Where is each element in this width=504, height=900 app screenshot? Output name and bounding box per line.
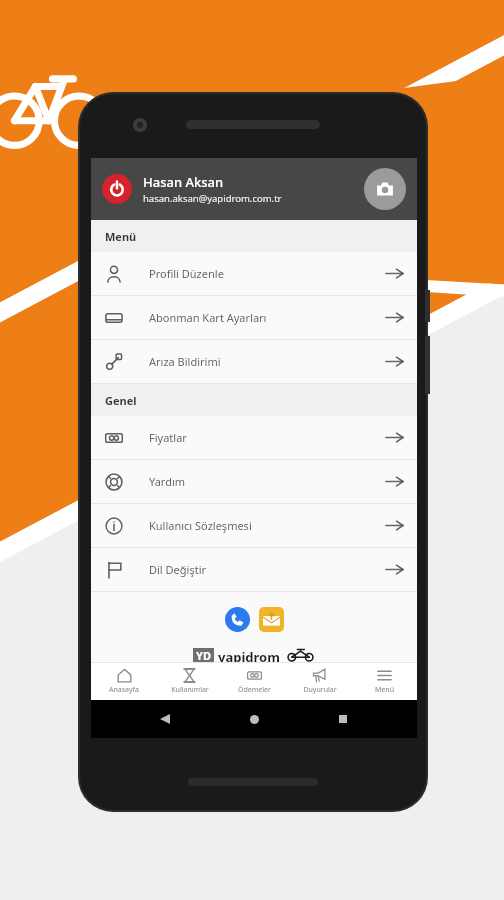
button[interactable]: Geri [150,704,180,734]
staticText: Arıza Bildirimi [149,354,386,369]
button[interactable]: Abonman Kart Ayarları [91,296,417,339]
staticText: Profili Düzenle [149,266,386,281]
staticText: Menü [105,229,137,244]
button[interactable]: Yardım [91,460,417,503]
button[interactable]: Menü [352,663,417,700]
staticText: Duyurular [303,685,337,695]
staticText: Kullanıcı Sözleşmesi [149,518,386,533]
staticText: Menü [375,685,394,695]
button[interactable]: Çıkış yap [102,174,132,204]
button[interactable]: Ödemeler [222,663,287,700]
staticText: Yardım [149,474,386,489]
staticText: Anasayfa [109,685,139,695]
button[interactable]: Kullanımlar [157,663,222,700]
button[interactable]: Telefon et [225,607,250,632]
button[interactable]: Arıza Bildirimi [91,340,417,383]
staticText: Fiyatlar [149,430,386,445]
button[interactable]: Dil Değiştir [91,548,417,591]
staticText: Kullanımlar [171,685,209,695]
staticText: Hasan Aksan [143,173,224,191]
button[interactable]: Fiyatlar [91,416,417,459]
button[interactable]: Anasayfa [91,663,157,700]
staticText: Dil Değiştir [149,562,386,577]
staticText: yapidrom [218,648,280,662]
button[interactable]: E-posta gönder [259,607,284,632]
button[interactable]: Duyurular [287,663,352,700]
staticText: YD [196,648,211,662]
button[interactable]: Son uygulamalar [328,704,358,734]
button[interactable]: Profili Düzenle [91,252,417,295]
staticText: Ödemeler [238,685,271,695]
staticText: Abonman Kart Ayarları [149,310,386,325]
staticText: Genel [105,393,137,408]
button[interactable]: Kullanıcı Sözleşmesi [91,504,417,547]
button[interactable]: Ana ekran [239,704,269,734]
button[interactable]: Fotoğraf çek [364,168,406,210]
staticText: hasan.aksan@yapidrom.com.tr [143,192,282,205]
